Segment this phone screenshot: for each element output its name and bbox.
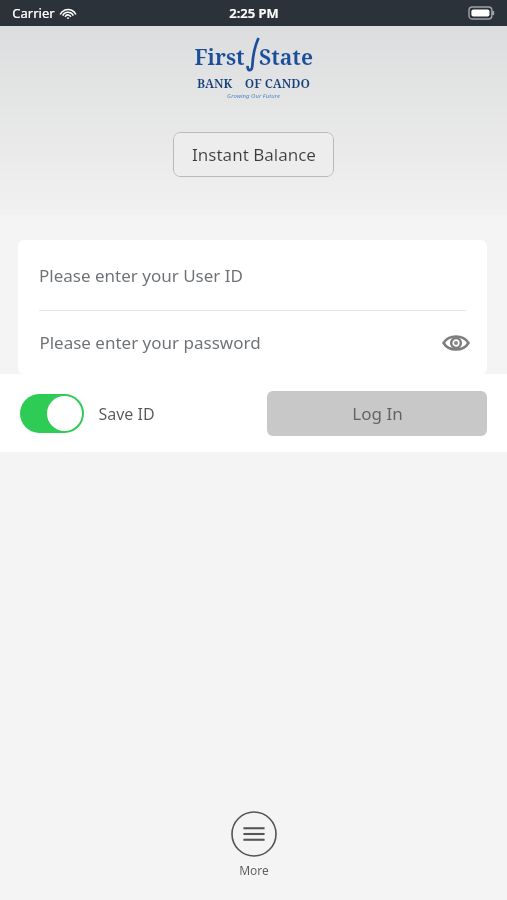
staticText: First	[194, 43, 245, 72]
button[interactable]: Please enter your password	[18, 311, 487, 374]
staticText: 2:25 PM	[229, 4, 279, 22]
staticText: Save ID	[98, 403, 155, 425]
staticText: More	[239, 862, 269, 878]
staticText: Log In	[352, 402, 403, 425]
staticText: State	[259, 43, 313, 72]
staticText: Instant Balance	[192, 143, 316, 166]
staticText: Please enter your password	[39, 331, 261, 354]
staticText: Growing Our Future	[227, 92, 280, 100]
staticText: BANK OF CANDO	[197, 75, 310, 91]
button[interactable]: Log In	[267, 391, 487, 436]
button[interactable]: Save ID	[20, 394, 155, 433]
button[interactable]: More	[213, 807, 295, 882]
staticText: Carrier	[12, 4, 55, 22]
button[interactable]: Please enter your User ID	[18, 240, 487, 310]
button[interactable]: Instant Balance	[173, 132, 334, 177]
staticText: Please enter your User ID	[39, 264, 243, 287]
button[interactable]: Show password	[439, 326, 473, 360]
